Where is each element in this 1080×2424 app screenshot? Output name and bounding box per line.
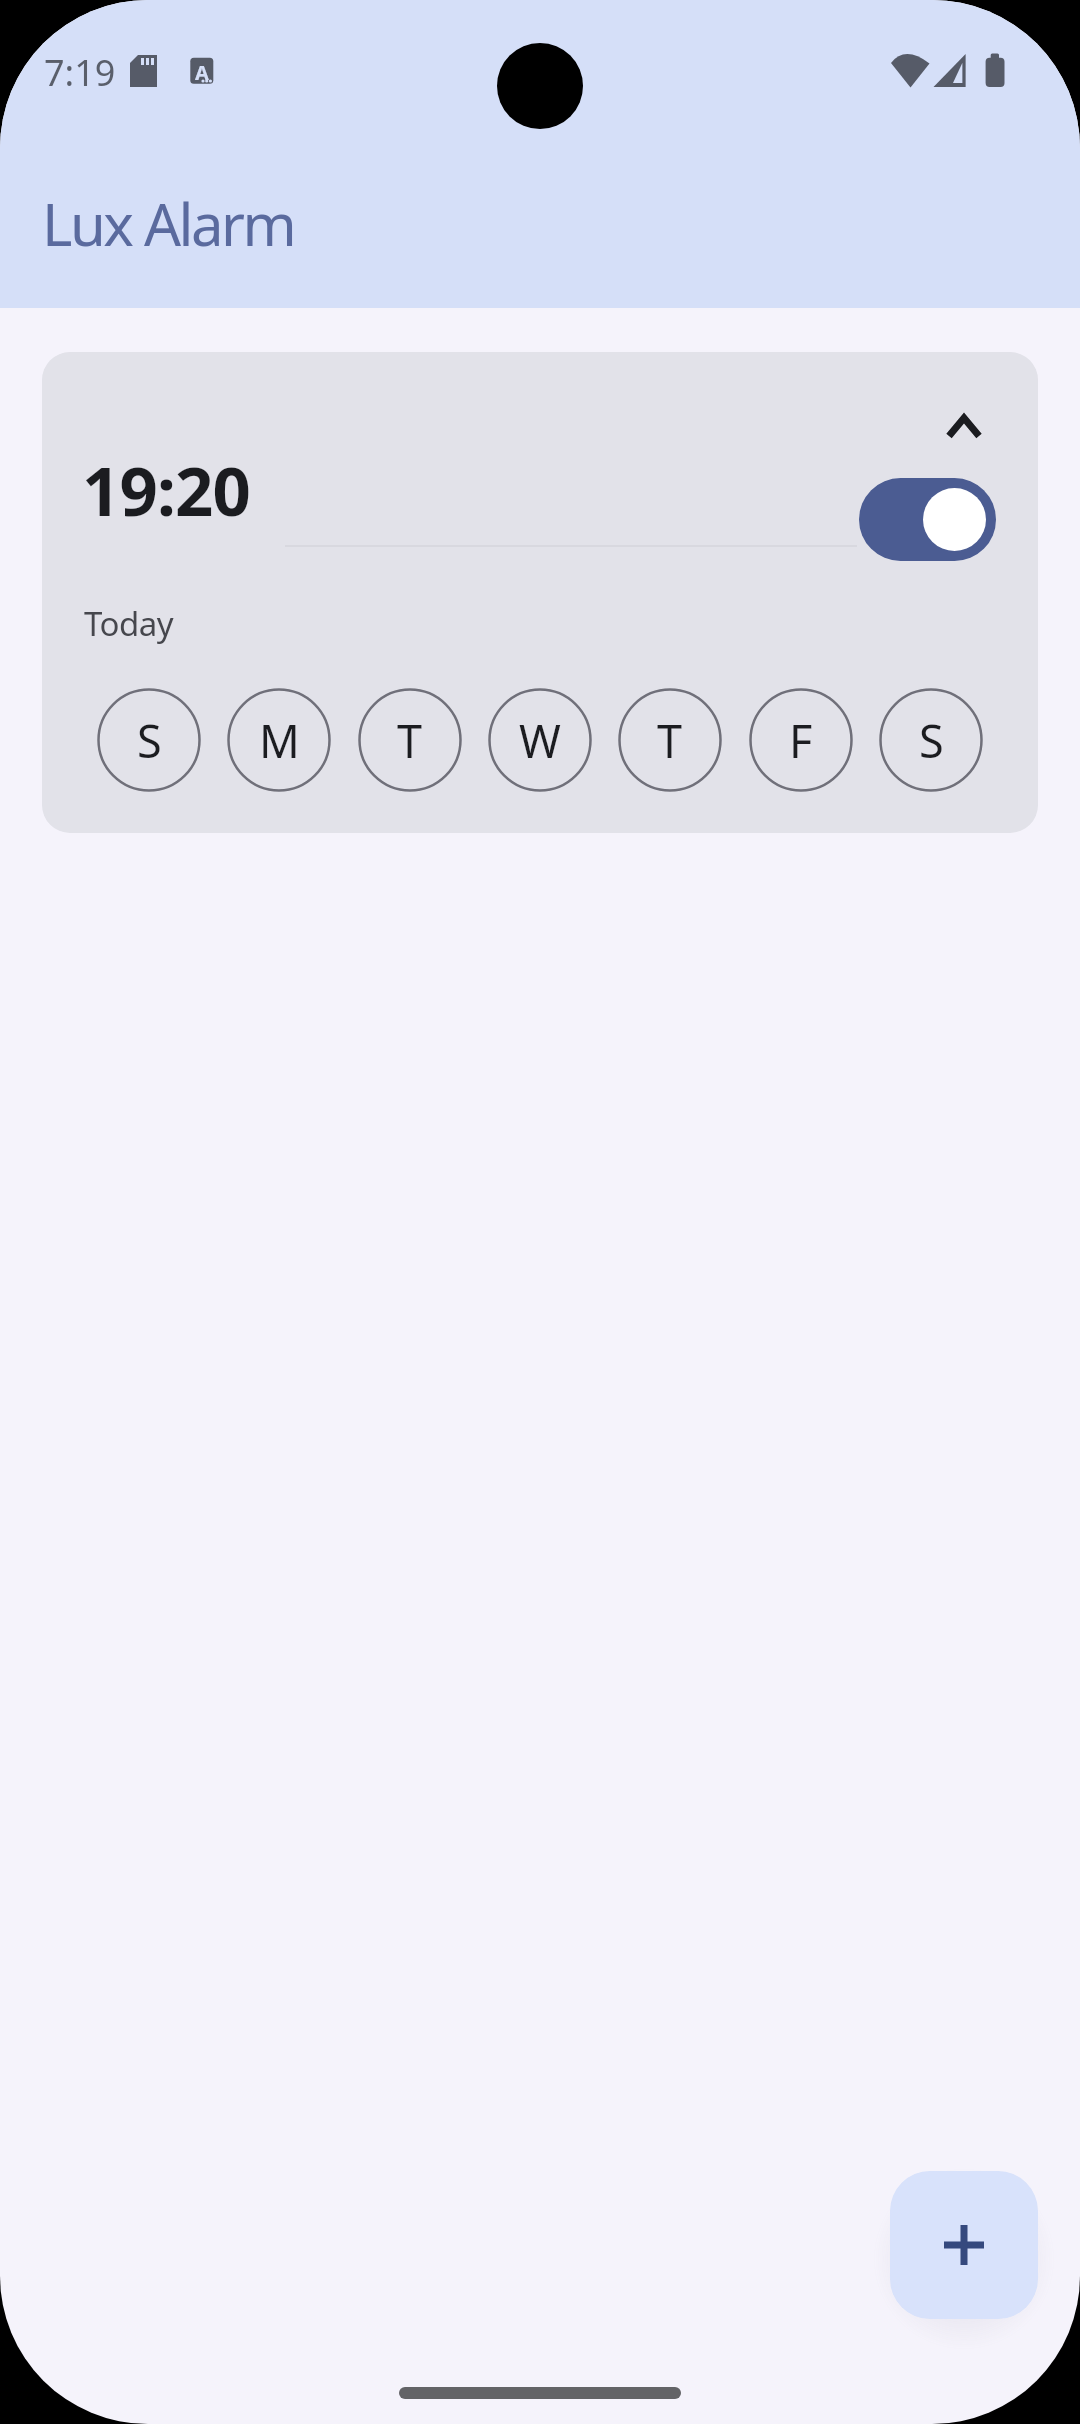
staticText: T <box>657 710 683 771</box>
staticText: W <box>519 710 561 771</box>
staticText: 19:20 <box>82 444 251 535</box>
button[interactable]: T <box>358 688 462 792</box>
staticText: 7:19 <box>44 48 116 97</box>
button[interactable] <box>859 478 996 561</box>
staticText: S <box>919 710 944 771</box>
staticText: M <box>259 710 300 771</box>
button[interactable]: 19:20 <box>42 352 1038 833</box>
button[interactable]: S <box>879 688 983 792</box>
button[interactable]: T <box>618 688 722 792</box>
staticText: Lux Alarm <box>42 184 295 263</box>
staticText: A <box>195 59 209 86</box>
button[interactable]: M <box>227 688 331 792</box>
staticText: S <box>137 710 162 771</box>
button[interactable]: F <box>749 688 853 792</box>
staticText: F <box>789 710 813 771</box>
button[interactable]: W <box>488 688 592 792</box>
button[interactable] <box>934 397 994 457</box>
staticText: T <box>397 710 423 771</box>
button[interactable]: S <box>97 688 201 792</box>
button[interactable] <box>890 2171 1038 2319</box>
staticText: Today <box>84 601 174 646</box>
